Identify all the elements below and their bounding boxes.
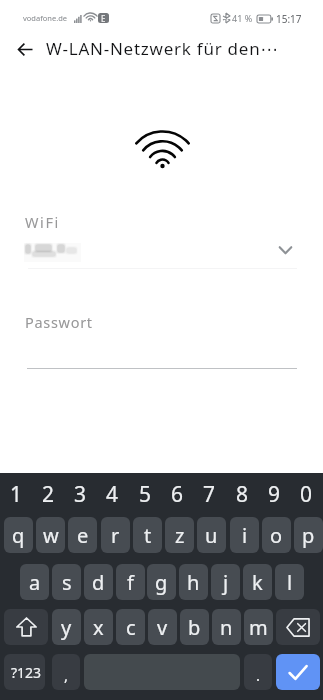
staticText: v xyxy=(157,614,168,641)
button[interactable]: g xyxy=(147,564,176,600)
button[interactable]: e xyxy=(68,517,97,553)
button[interactable]: p xyxy=(294,517,323,553)
staticText: 7 xyxy=(203,480,216,509)
button[interactable]: c xyxy=(116,609,145,645)
staticText: y xyxy=(61,614,72,641)
staticText: 3 xyxy=(74,480,87,509)
staticText: s xyxy=(62,569,72,596)
staticText: 0 xyxy=(300,480,313,509)
staticText: n xyxy=(220,614,233,641)
button[interactable]: Löschen xyxy=(276,609,320,645)
button[interactable]: k xyxy=(243,564,272,600)
staticText: t xyxy=(144,522,152,549)
button[interactable]: ?123 xyxy=(4,654,45,690)
staticText: 1 xyxy=(10,480,23,509)
staticText: 2 xyxy=(42,480,55,509)
staticText: 9 xyxy=(268,480,281,509)
staticText: u xyxy=(205,522,218,549)
button[interactable]: Umschalt xyxy=(4,609,48,645)
staticText: p xyxy=(302,522,315,549)
staticText: f xyxy=(127,569,134,596)
button[interactable]: d xyxy=(84,564,113,600)
staticText: 15:17 xyxy=(276,12,302,24)
button[interactable]: m xyxy=(244,609,273,645)
button[interactable]: 8 xyxy=(226,476,258,512)
button[interactable]: Zurück xyxy=(4,25,46,71)
button[interactable]: o xyxy=(262,517,291,553)
button[interactable]: 1 xyxy=(0,476,32,512)
staticText: o xyxy=(270,522,283,549)
staticText: g xyxy=(155,569,168,596)
staticText: a xyxy=(29,569,41,596)
button[interactable]: . xyxy=(244,654,272,690)
button[interactable]: x xyxy=(84,609,113,645)
staticText: Passwort xyxy=(25,312,93,332)
button[interactable]: f xyxy=(116,564,145,600)
staticText: h xyxy=(187,569,200,596)
staticText: 41 % xyxy=(232,12,253,24)
staticText: vodafone.de xyxy=(23,13,68,23)
button[interactable]: 4 xyxy=(96,476,128,512)
button[interactable]: q xyxy=(4,517,33,553)
button[interactable]: h xyxy=(179,564,208,600)
staticText: 6 xyxy=(171,480,184,509)
button[interactable]: b xyxy=(180,609,209,645)
staticText: z xyxy=(175,522,185,549)
button[interactable]: Netzwerk auswählen xyxy=(275,242,296,259)
button[interactable]: l xyxy=(275,564,304,600)
staticText: k xyxy=(252,569,263,596)
button[interactable]: r xyxy=(101,517,130,553)
button[interactable]: 2 xyxy=(32,476,64,512)
staticText: q xyxy=(12,522,25,549)
staticText: c xyxy=(126,614,136,641)
button[interactable]: 3 xyxy=(64,476,96,512)
staticText: W-LAN-Netzwerk für den⋯ xyxy=(46,37,279,60)
staticText: 8 xyxy=(236,480,249,509)
button[interactable]: 9 xyxy=(258,476,290,512)
button[interactable]: n xyxy=(212,609,241,645)
staticText: WiFi xyxy=(25,212,60,232)
staticText: , xyxy=(64,665,69,685)
staticText: j xyxy=(223,569,229,596)
staticText: . xyxy=(256,665,261,685)
staticText: l xyxy=(287,569,293,596)
button[interactable]: s xyxy=(52,564,81,600)
button[interactable]: j xyxy=(211,564,240,600)
button[interactable]: v xyxy=(148,609,177,645)
staticText: r xyxy=(111,522,120,549)
staticText: m xyxy=(249,614,268,641)
staticText: 4 xyxy=(106,480,119,509)
staticText: d xyxy=(92,569,105,596)
staticText: w xyxy=(43,522,59,549)
button[interactable]: 0 xyxy=(290,476,322,512)
button[interactable]: i xyxy=(230,517,259,553)
staticText: e xyxy=(77,522,89,549)
staticText: 5 xyxy=(139,480,152,509)
button[interactable]: w xyxy=(36,517,65,553)
button[interactable]: 5 xyxy=(129,476,161,512)
button[interactable]: 7 xyxy=(193,476,225,512)
staticText: i xyxy=(242,522,248,549)
staticText: b xyxy=(188,614,201,641)
button[interactable]: a xyxy=(20,564,49,600)
button[interactable]: z xyxy=(165,517,194,553)
button[interactable]: t xyxy=(133,517,162,553)
button[interactable]: y xyxy=(52,609,81,645)
button[interactable]: u xyxy=(197,517,226,553)
button[interactable]: , xyxy=(52,654,80,690)
button[interactable]: 6 xyxy=(161,476,193,512)
other: WLAN xyxy=(128,126,197,172)
staticText: x xyxy=(93,614,104,641)
staticText: E xyxy=(101,13,106,23)
button[interactable]: Eingabe xyxy=(276,654,320,690)
staticText: ?123 xyxy=(11,663,42,682)
